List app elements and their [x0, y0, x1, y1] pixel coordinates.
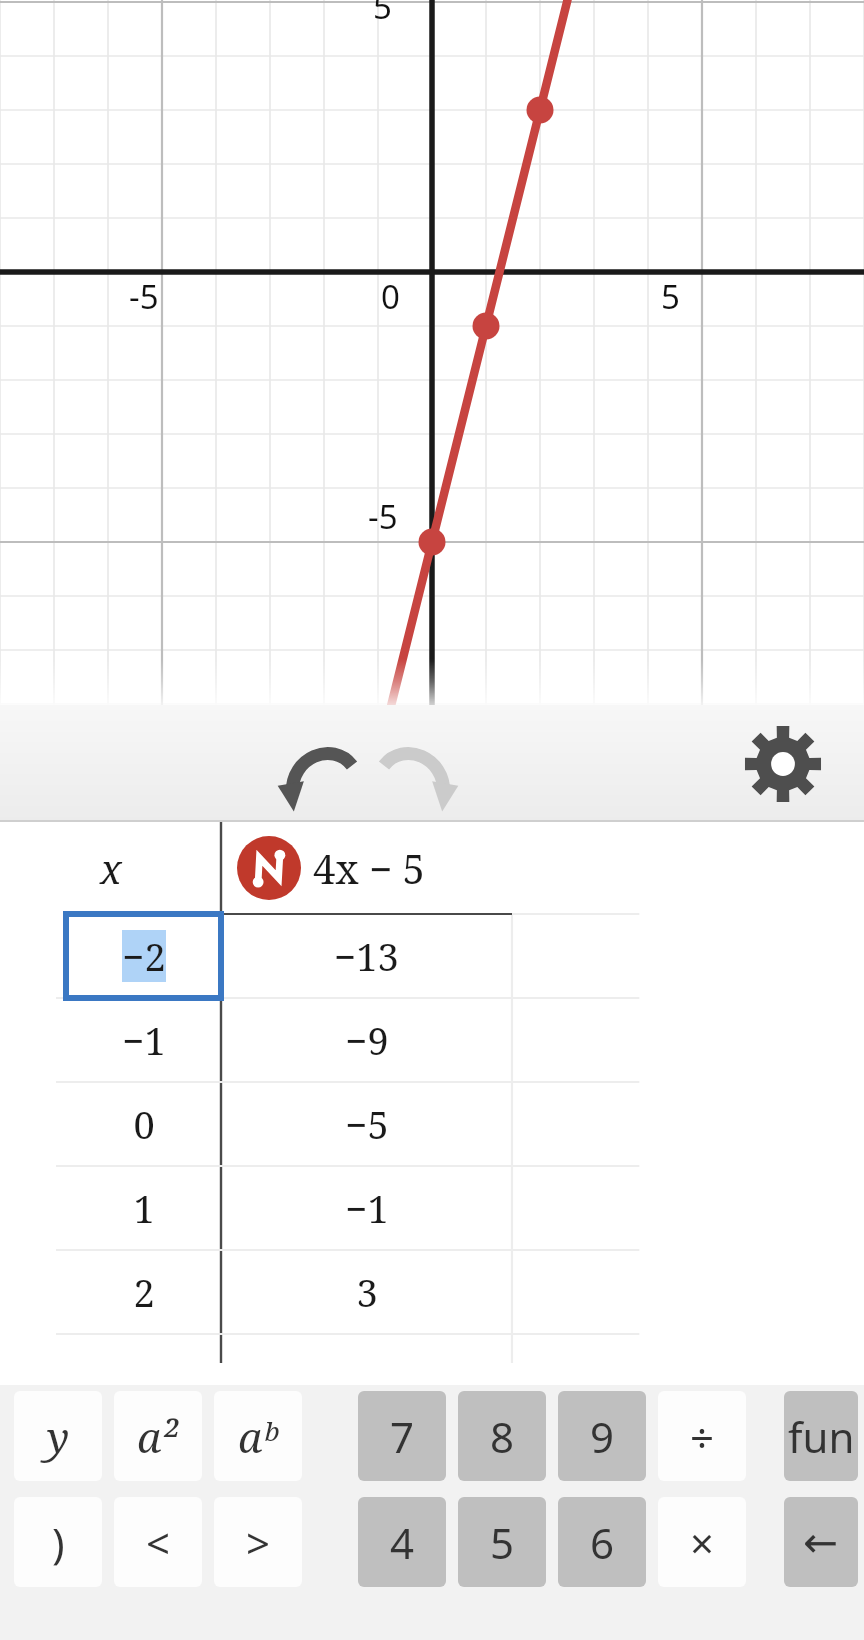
button[interactable]: 9 [558, 1391, 646, 1481]
button[interactable]: fun [784, 1391, 858, 1481]
button[interactable]: ) [14, 1497, 102, 1587]
staticText: −13 [334, 930, 399, 982]
staticText: 3 [356, 1266, 378, 1318]
button[interactable]: −2 [66, 914, 221, 998]
button[interactable]: y [14, 1391, 102, 1481]
staticText: 8 [490, 1408, 515, 1465]
staticText: −1 [122, 1014, 166, 1066]
button[interactable]: −1 [66, 998, 221, 1082]
button[interactable]: −1 [221, 1166, 512, 1250]
button[interactable]: 0 [66, 1082, 221, 1166]
staticText: 7 [390, 1408, 415, 1465]
button[interactable]: aᵇ [214, 1391, 302, 1481]
staticText: −5 [345, 1098, 389, 1150]
staticText: x [100, 841, 122, 895]
staticText: -5 [368, 494, 398, 539]
staticText: × [690, 1514, 715, 1571]
button[interactable]: Undo [272, 729, 368, 799]
button[interactable]: −5 [221, 1082, 512, 1166]
staticText: > [246, 1514, 271, 1571]
button[interactable]: 6 [558, 1497, 646, 1587]
button[interactable]: ÷ [658, 1391, 746, 1481]
button[interactable]: > [214, 1497, 302, 1587]
staticText: 4 [390, 1514, 415, 1571]
staticText: 4x − 5 [313, 841, 425, 895]
button[interactable]: ← [784, 1497, 858, 1587]
button[interactable]: 7 [358, 1391, 446, 1481]
button[interactable]: −9 [221, 998, 512, 1082]
staticText: 0 [381, 274, 400, 319]
staticText: < [146, 1514, 171, 1571]
button[interactable]: 8 [458, 1391, 546, 1481]
staticText: 5 [373, 0, 392, 29]
staticText: 5 [661, 274, 680, 319]
staticText: ← [803, 1518, 839, 1567]
button[interactable]: < [114, 1497, 202, 1587]
button[interactable]: Redo [368, 729, 464, 799]
button[interactable]: 1 [66, 1166, 221, 1250]
staticText: fun [788, 1408, 855, 1465]
button[interactable]: 5 [458, 1497, 546, 1587]
staticText: −9 [345, 1014, 389, 1066]
staticText: 9 [590, 1408, 615, 1465]
staticText: aᵇ [238, 1408, 278, 1465]
button[interactable]: −13 [221, 914, 512, 998]
staticText: 1 [133, 1182, 155, 1234]
button[interactable]: 2 [66, 1250, 221, 1334]
button[interactable]: 3 [221, 1250, 512, 1334]
staticText: 5 [490, 1514, 515, 1571]
staticText: y [47, 1408, 70, 1465]
staticText: −2 [122, 930, 166, 982]
staticText: -5 [129, 274, 159, 319]
button[interactable]: x [0, 822, 221, 914]
button[interactable]: Settings [740, 723, 826, 805]
staticText: −1 [345, 1182, 389, 1234]
staticText: 0 [133, 1098, 155, 1150]
staticText: ÷ [690, 1408, 715, 1465]
staticText: a² [137, 1408, 179, 1465]
staticText: 2 [133, 1266, 155, 1318]
button[interactable]: × [658, 1497, 746, 1587]
button[interactable]: 4x − 5 [221, 822, 512, 914]
button[interactable]: 4 [358, 1497, 446, 1587]
staticText: ) [52, 1514, 65, 1571]
button[interactable]: a² [114, 1391, 202, 1481]
staticText: 6 [590, 1514, 615, 1571]
